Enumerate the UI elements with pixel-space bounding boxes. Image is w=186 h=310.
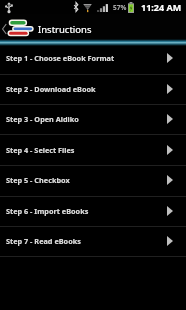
staticText: Step 4 - Select Files [6, 145, 167, 155]
staticText: Step 3 - Open Aldiko [6, 114, 167, 124]
button[interactable]: Step 2 - Download eBook [0, 75, 186, 105]
staticText: 11:24 AM [141, 1, 182, 13]
button[interactable]: Up, Instructions [0, 14, 186, 39]
button[interactable]: Step 6 - Import eBooks [0, 197, 186, 227]
button[interactable]: Step 4 - Select Files [0, 136, 186, 166]
staticText: Step 1 - Choose eBook Format [6, 53, 167, 63]
button[interactable]: Step 3 - Open Aldiko [0, 105, 186, 135]
staticText: 57% [113, 3, 127, 12]
button[interactable]: Step 7 - Read eBooks [0, 227, 186, 257]
button[interactable]: Step 5 - Checkbox [0, 166, 186, 196]
staticText: Step 2 - Download eBook [6, 84, 167, 94]
staticText: Instructions [38, 23, 92, 36]
staticText: Step 7 - Read eBooks [6, 236, 167, 246]
staticText: Step 5 - Checkbox [6, 175, 167, 185]
staticText: Step 6 - Import eBooks [6, 206, 167, 216]
button[interactable]: Step 1 - Choose eBook Format [0, 44, 186, 74]
